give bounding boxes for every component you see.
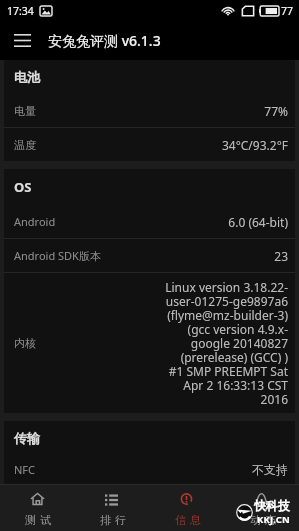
staticText: 77 — [281, 4, 294, 18]
staticText: 快科技 — [254, 498, 290, 513]
staticText: 6.0 (64-bit) — [228, 214, 288, 230]
staticText: Android — [14, 214, 56, 229]
button[interactable]: Android — [4, 205, 295, 238]
staticText: 温度 — [14, 138, 36, 152]
staticText: 不支持 — [252, 462, 288, 477]
staticText: 测试 — [23, 513, 53, 527]
button[interactable]: 温度 — [4, 128, 295, 161]
staticText: KKJ.CN — [257, 513, 290, 526]
staticText: 传输 — [14, 430, 40, 446]
staticText: 34°C/93.2°F — [221, 137, 288, 153]
button[interactable]: NFC — [4, 455, 295, 484]
button[interactable]: 电量 — [4, 94, 295, 127]
button[interactable]: Open navigation menu — [0, 20, 44, 60]
staticText: 信息 — [173, 513, 203, 527]
staticText: Linux version 3.18.22- user-01275-ge9897… — [165, 279, 288, 407]
staticText: NFC — [14, 462, 36, 477]
staticText: 安兔兔评测 v6.1.3 — [48, 31, 161, 50]
button[interactable]: Android SDK版本 — [4, 239, 295, 272]
staticText: OS — [14, 178, 32, 196]
staticText: 电量 — [14, 104, 36, 118]
button[interactable]: 排行 — [74, 485, 149, 531]
staticText: 动态 — [248, 513, 278, 527]
staticText: 23 — [274, 248, 288, 264]
button[interactable]: 内核 — [4, 273, 295, 413]
staticText: 排行 — [98, 513, 128, 527]
button[interactable]: 动态 — [224, 485, 299, 531]
staticText: 电池 — [14, 69, 40, 85]
staticText: Android SDK版本 — [14, 248, 101, 263]
staticText: 内核 — [14, 336, 36, 350]
button[interactable]: 信息 — [149, 485, 224, 531]
button[interactable]: 测试 — [0, 485, 74, 531]
staticText: 17:34 — [7, 4, 34, 18]
staticText: 77% — [264, 103, 288, 119]
